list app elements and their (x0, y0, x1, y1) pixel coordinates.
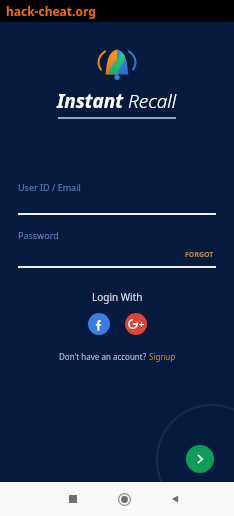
button[interactable]: Home (113, 488, 135, 510)
staticText: Signup (149, 351, 176, 362)
staticText: Don't have an account? (59, 351, 149, 362)
button[interactable]: Recent apps (62, 488, 84, 510)
button[interactable]: Login with Google Plus (125, 313, 147, 335)
staticText: Login With (92, 290, 143, 304)
staticText: hack-cheat.org (6, 3, 96, 19)
staticText: User ID / Email (18, 181, 81, 193)
button[interactable]: FORGOT (183, 249, 216, 261)
button[interactable]: Login with Facebook (88, 313, 110, 335)
button[interactable]: Don't have an account? (57, 349, 178, 364)
staticText: FORGOT (185, 250, 214, 260)
staticText: Instant (57, 88, 124, 114)
staticText: Password (18, 229, 59, 241)
staticText: Recall (128, 88, 177, 114)
button[interactable]: Back (164, 488, 186, 510)
button[interactable]: Next (186, 445, 214, 473)
